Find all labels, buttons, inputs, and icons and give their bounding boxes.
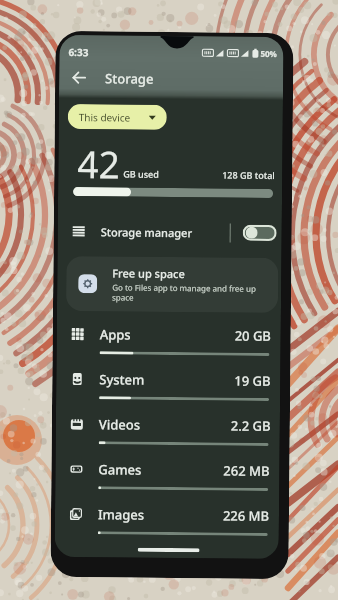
button[interactable]: Games — [70, 457, 270, 501]
button[interactable]: This device — [68, 104, 167, 130]
button[interactable]: Storage manager — [58, 217, 282, 247]
button[interactable]: Back — [65, 64, 92, 91]
staticText: Storage manager — [101, 224, 193, 240]
staticText: 6:33 — [68, 45, 88, 59]
staticText: 262 MB — [223, 461, 270, 480]
button[interactable]: System — [71, 367, 271, 411]
staticText: Go to Files app to manage and free up sp… — [112, 281, 270, 304]
button[interactable]: Videos — [71, 412, 271, 456]
button[interactable]: Apps — [71, 322, 272, 366]
button[interactable]: Storage manager toggle — [243, 225, 277, 241]
staticText: Storage — [105, 69, 154, 88]
button[interactable]: Free up space — [66, 256, 278, 313]
button[interactable]: Images — [70, 502, 270, 546]
staticText: Games — [98, 460, 141, 479]
staticText: 42 — [77, 138, 121, 188]
staticText: Videos — [99, 415, 141, 434]
staticText: 128 GB total — [222, 168, 275, 181]
staticText: 19 GB — [234, 372, 271, 390]
staticText: Free up space — [112, 265, 185, 281]
staticText: Apps — [100, 325, 131, 344]
staticText: 20 GB — [235, 327, 272, 345]
staticText: GB used — [123, 167, 159, 180]
staticText: 50% — [260, 48, 277, 59]
staticText: 2.2 GB — [231, 417, 271, 435]
staticText: System — [99, 370, 145, 389]
staticText: 226 MB — [223, 506, 270, 525]
staticText: Images — [98, 505, 145, 524]
staticText: This device — [79, 110, 131, 125]
